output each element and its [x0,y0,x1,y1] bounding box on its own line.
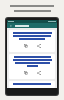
button[interactable]: Share [36,43,42,49]
button[interactable] [9,81,55,88]
button[interactable]: Copy [23,43,29,49]
button[interactable]: Copy [9,30,55,52]
button[interactable]: Copy [9,54,55,79]
button[interactable]: Share [36,70,42,76]
button[interactable]: Back [9,24,13,28]
button[interactable]: Copy [23,70,29,76]
